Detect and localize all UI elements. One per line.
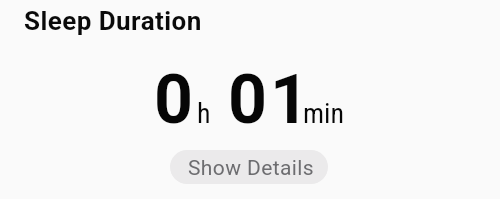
staticText: 01 [228, 60, 313, 140]
staticText: 0 [154, 60, 194, 140]
staticText: Show Details [188, 156, 315, 181]
staticText: h [197, 97, 211, 130]
staticText: min [303, 97, 345, 130]
staticText: Sleep Duration [24, 6, 202, 36]
button[interactable]: Show Details [170, 150, 328, 184]
